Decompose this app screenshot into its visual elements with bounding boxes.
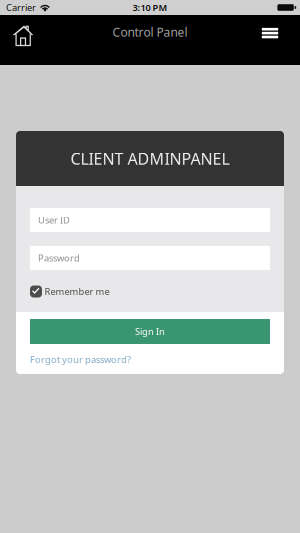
button[interactable]: Forgot your password?	[30, 353, 270, 366]
staticText: Remember me	[44, 285, 109, 298]
button[interactable]: Menu	[247, 15, 293, 65]
staticText: 3:10 PM	[132, 1, 167, 14]
staticText: Password	[38, 252, 80, 264]
staticText: Forgot your password?	[30, 353, 131, 366]
staticText: Carrier	[6, 1, 36, 14]
staticText: Sign In	[135, 325, 165, 338]
staticText: Control Panel	[112, 24, 187, 40]
button[interactable]: Sign In	[30, 319, 270, 344]
staticText: CLIENT ADMINPANEL	[70, 148, 229, 169]
button[interactable]: Remember me	[30, 285, 270, 298]
staticText: User ID	[38, 214, 70, 226]
button[interactable]: Home	[0, 15, 46, 65]
